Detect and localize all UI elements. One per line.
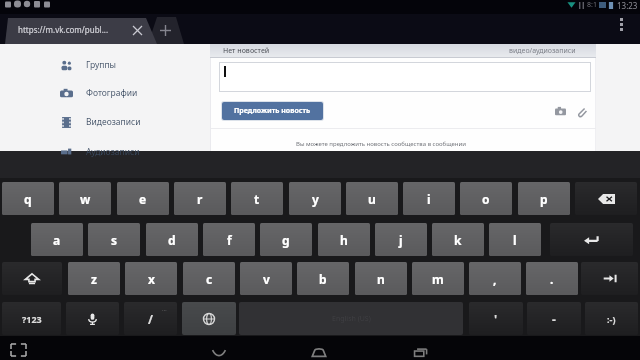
staticText: a: [53, 232, 61, 248]
button[interactable]: Shift: [2, 262, 62, 295]
button[interactable]: Attach photo: [551, 102, 569, 120]
button[interactable]: r: [174, 182, 226, 215]
staticText: Видеозаписи: [86, 116, 141, 128]
staticText: …: [162, 305, 167, 313]
button[interactable]: z: [68, 262, 120, 295]
staticText: i: [427, 191, 431, 207]
staticText: https://m.vk.com/publ...: [18, 24, 109, 35]
staticText: Группы: [86, 59, 117, 71]
staticText: English (US): [332, 314, 371, 324]
button[interactable]: Close tab: [128, 21, 147, 40]
button[interactable]: Attach file: [572, 102, 590, 120]
button[interactable]: Home: [302, 343, 336, 360]
staticText: x: [148, 271, 155, 287]
staticText: h: [340, 232, 348, 248]
button[interactable]: g: [260, 223, 312, 256]
staticText: w: [80, 191, 91, 207]
button[interactable]: Hide keyboard: [202, 343, 236, 360]
staticText: l: [513, 232, 517, 248]
staticText: v: [263, 271, 270, 287]
staticText: /: [148, 311, 153, 327]
button[interactable]: Предложить новость: [222, 102, 323, 120]
staticText: ,: [493, 271, 497, 287]
button[interactable]: f: [203, 223, 255, 256]
button[interactable]: -: [527, 302, 581, 335]
button[interactable]: l: [489, 223, 541, 256]
staticText: f: [227, 232, 232, 248]
staticText: Фотографии: [86, 87, 138, 99]
button[interactable]: [219, 62, 591, 92]
button[interactable]: w: [59, 182, 111, 215]
button[interactable]: s: [88, 223, 140, 256]
staticText: 13:23: [617, 0, 638, 10]
staticText: z: [91, 271, 97, 287]
button[interactable]: ': [469, 302, 523, 335]
button[interactable]: Enter: [550, 223, 633, 256]
staticText: o: [482, 191, 490, 207]
staticText: 8:1: [587, 0, 597, 10]
staticText: k: [454, 232, 462, 248]
button[interactable]: Change language: [182, 302, 236, 335]
button[interactable]: u: [346, 182, 398, 215]
button[interactable]: n: [355, 262, 407, 295]
staticText: p: [540, 191, 548, 207]
button[interactable]: h: [318, 223, 370, 256]
button[interactable]: y: [289, 182, 341, 215]
staticText: ': [494, 311, 498, 327]
button[interactable]: Backspace: [575, 182, 637, 215]
staticText: -: [552, 311, 556, 327]
button[interactable]: Аудиозаписи: [55, 141, 205, 163]
button[interactable]: Voice input: [66, 302, 119, 335]
button[interactable]: Recent apps: [404, 343, 438, 360]
button[interactable]: :-): [585, 302, 638, 335]
button[interactable]: More options: [612, 15, 630, 33]
button[interactable]: Next field: [581, 262, 638, 295]
button[interactable]: q: [2, 182, 54, 215]
staticText: e: [139, 191, 147, 207]
button[interactable]: t: [231, 182, 283, 215]
button[interactable]: Видеозаписи: [55, 111, 205, 133]
button[interactable]: b: [297, 262, 349, 295]
button[interactable]: Фотографии: [55, 82, 205, 104]
button[interactable]: x: [125, 262, 177, 295]
staticText: u: [368, 191, 376, 207]
button[interactable]: p: [518, 182, 570, 215]
button[interactable]: e: [117, 182, 169, 215]
button[interactable]: Fullscreen: [4, 341, 32, 359]
button[interactable]: [5, 17, 157, 44]
staticText: g: [282, 232, 290, 248]
staticText: y: [312, 191, 319, 207]
staticText: m: [432, 271, 444, 287]
staticText: t: [254, 191, 260, 207]
staticText: n: [377, 271, 385, 287]
button[interactable]: ?123: [2, 302, 61, 335]
staticText: .: [550, 271, 554, 287]
staticText: :-): [607, 313, 616, 325]
staticText: r: [197, 191, 203, 207]
staticText: видео/аудиозаписи: [509, 46, 576, 56]
button[interactable]: c: [183, 262, 235, 295]
staticText: d: [168, 232, 176, 248]
button[interactable]: ,: [469, 262, 521, 295]
button[interactable]: i: [403, 182, 455, 215]
button[interactable]: New tab: [156, 21, 175, 40]
button[interactable]: a: [31, 223, 83, 256]
button[interactable]: k: [432, 223, 484, 256]
staticText: s: [111, 232, 118, 248]
button[interactable]: j: [375, 223, 427, 256]
button[interactable]: o: [460, 182, 512, 215]
staticText: Предложить новость: [234, 106, 311, 116]
staticText: q: [24, 191, 32, 207]
button[interactable]: .: [526, 262, 578, 295]
button[interactable]: m: [412, 262, 464, 295]
button[interactable]: v: [240, 262, 292, 295]
button[interactable]: d: [146, 223, 198, 256]
staticText: j: [399, 232, 403, 248]
staticText: Аудиозаписи: [86, 146, 140, 158]
staticText: ?123: [22, 313, 42, 325]
staticText: b: [319, 271, 327, 287]
staticText: Вы можете предложить новость сообщества …: [296, 140, 467, 148]
button[interactable]: /: [124, 302, 177, 335]
button[interactable]: Группы: [55, 54, 205, 76]
